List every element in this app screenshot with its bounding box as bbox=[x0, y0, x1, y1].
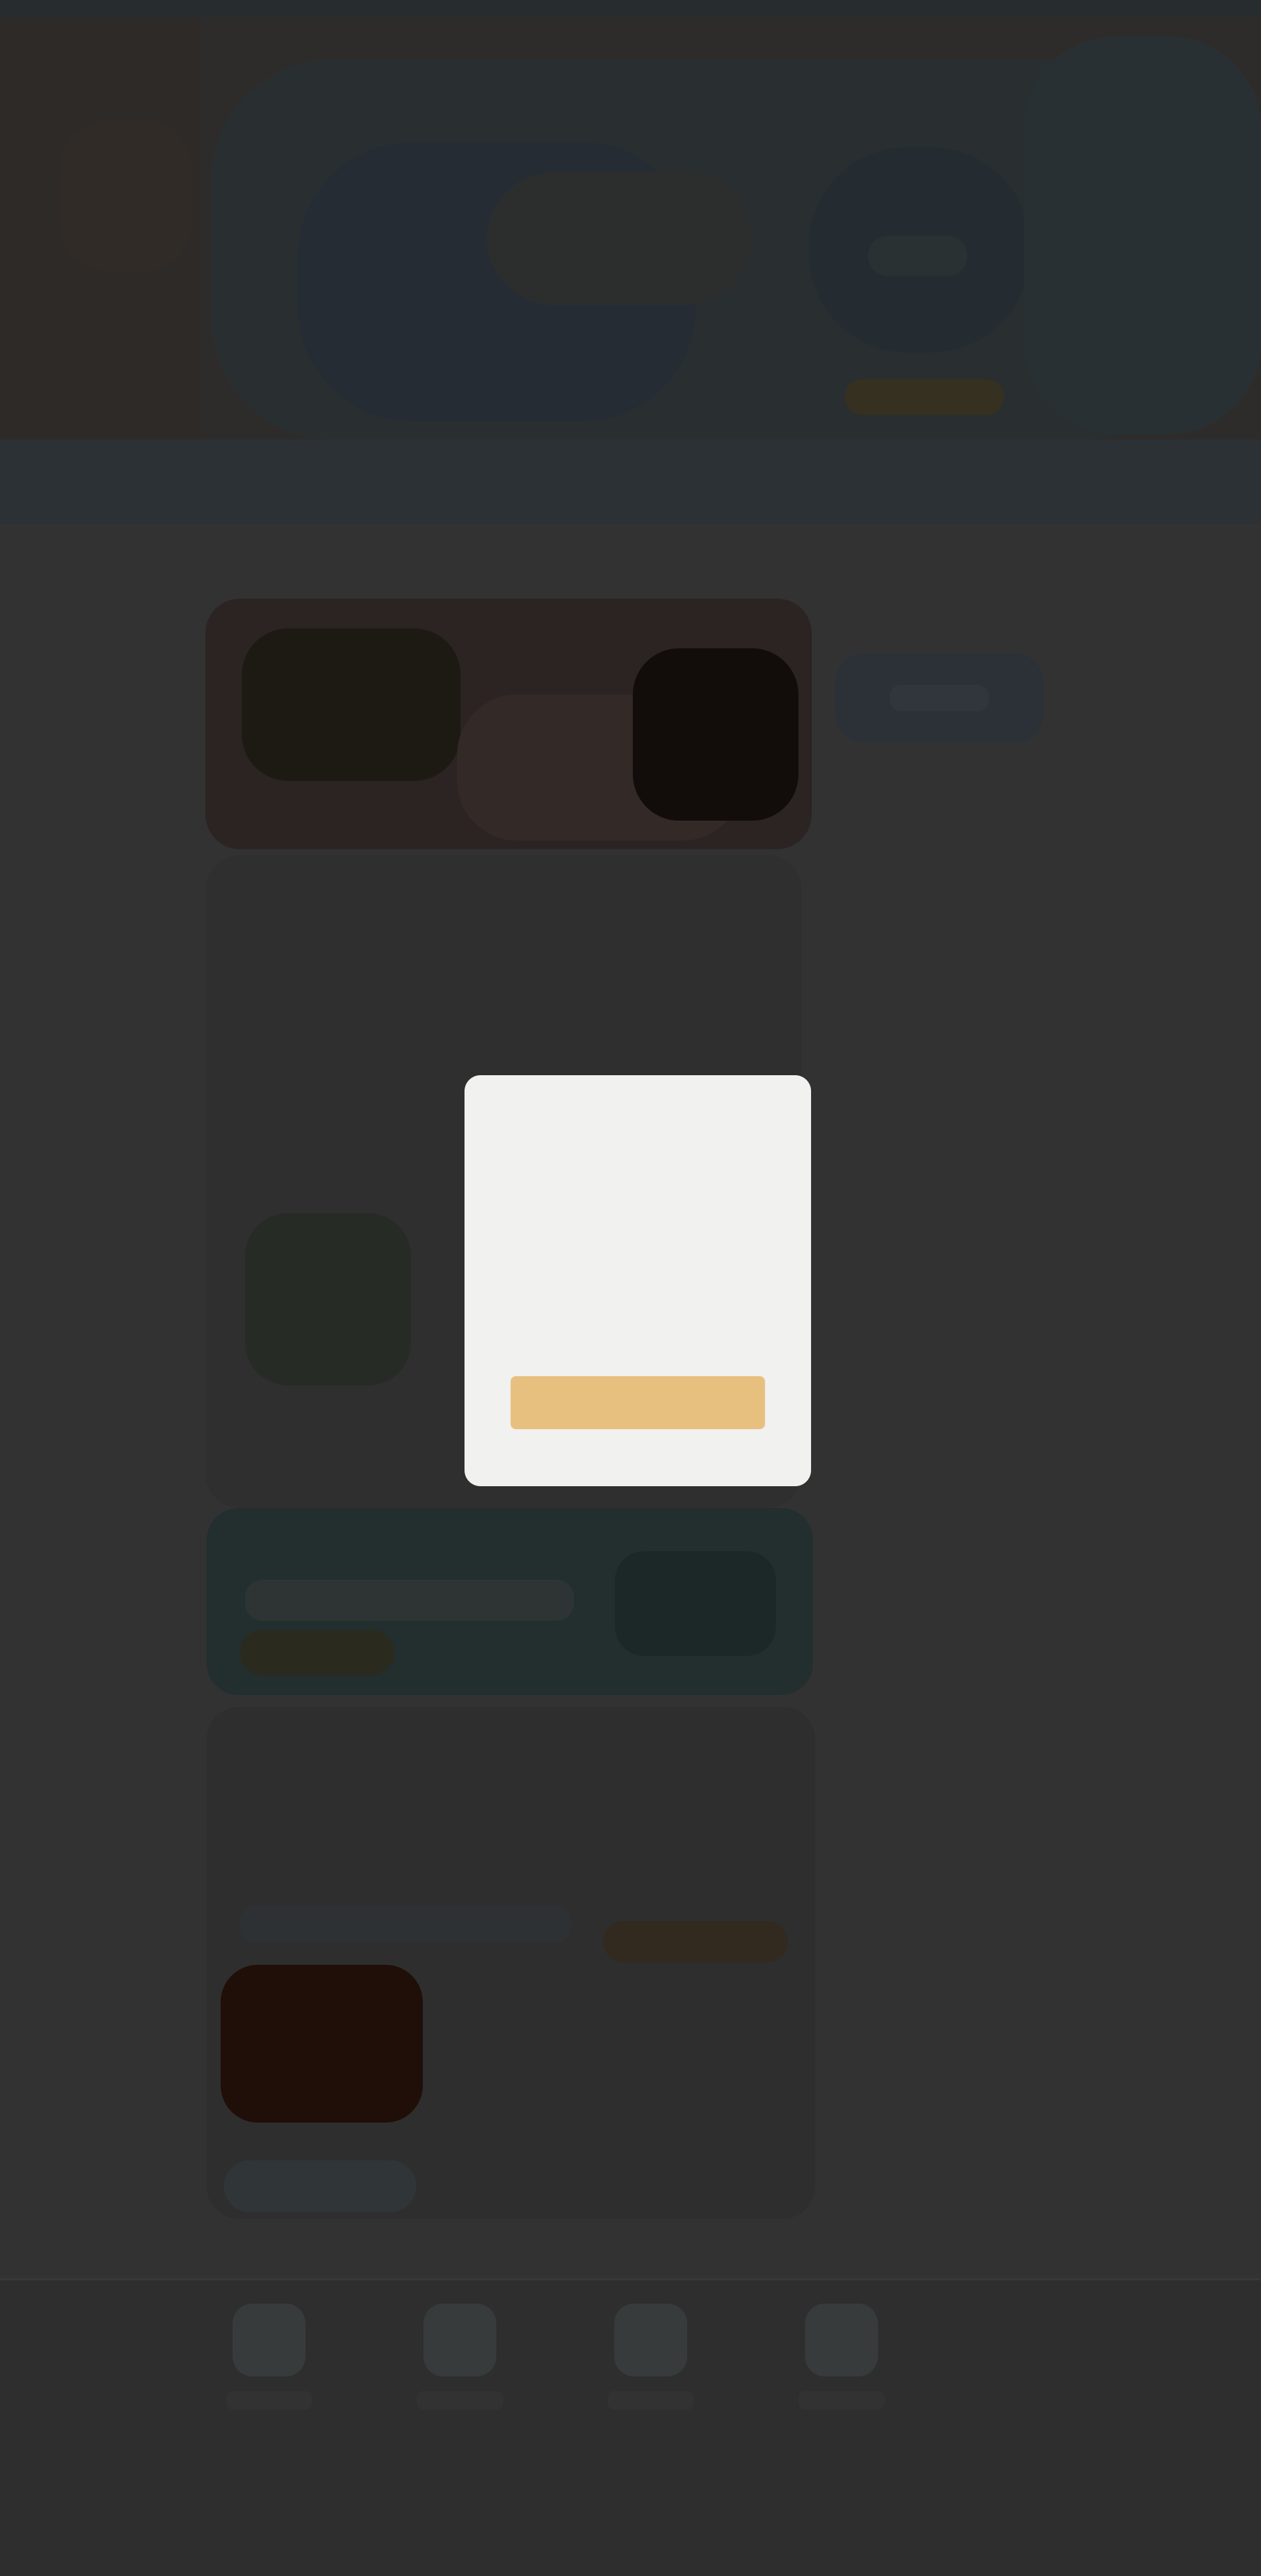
button[interactable]: Profile bbox=[746, 2280, 937, 2576]
button[interactable]: Summary bbox=[207, 1508, 813, 1695]
button[interactable]: Search bbox=[364, 2280, 555, 2576]
button[interactable]: Entry bbox=[207, 1707, 815, 2219]
button[interactable]: Add bbox=[555, 2280, 746, 2576]
button[interactable]: Photo bbox=[205, 599, 812, 849]
button[interactable]: Home bbox=[174, 2280, 364, 2576]
